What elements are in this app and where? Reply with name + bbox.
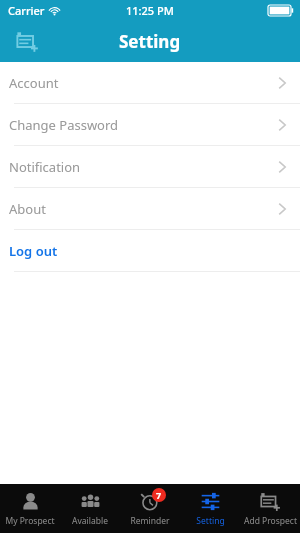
button[interactable]: Add Prospect <box>240 484 300 533</box>
button[interactable]: Add Prospect <box>10 24 44 58</box>
button[interactable]: Log out <box>0 230 300 271</box>
staticText: Reminder <box>130 515 170 527</box>
staticText: Carrier <box>8 3 45 18</box>
button[interactable]: Available <box>60 484 120 533</box>
staticText: Change Password <box>9 116 119 134</box>
staticText: Notification <box>9 158 81 176</box>
staticText: Add Prospect <box>244 515 297 527</box>
staticText: Setting <box>196 515 225 527</box>
button[interactable]: Setting <box>180 484 240 533</box>
button[interactable]: Account <box>0 62 300 103</box>
staticText: Available <box>72 515 108 527</box>
staticText: About <box>9 200 46 218</box>
staticText: Account <box>9 74 59 92</box>
staticText: 11:25 PM <box>126 3 174 18</box>
button[interactable]: Change Password <box>0 104 300 145</box>
button[interactable]: My Prospect <box>0 484 60 533</box>
staticText: My Prospect <box>5 515 55 527</box>
staticText: Log out <box>9 242 58 260</box>
button[interactable]: About <box>0 188 300 229</box>
button[interactable]: 7 <box>120 484 180 533</box>
button[interactable]: Notification <box>0 146 300 187</box>
staticText: Setting <box>119 30 181 53</box>
staticText: 7 <box>156 489 162 501</box>
